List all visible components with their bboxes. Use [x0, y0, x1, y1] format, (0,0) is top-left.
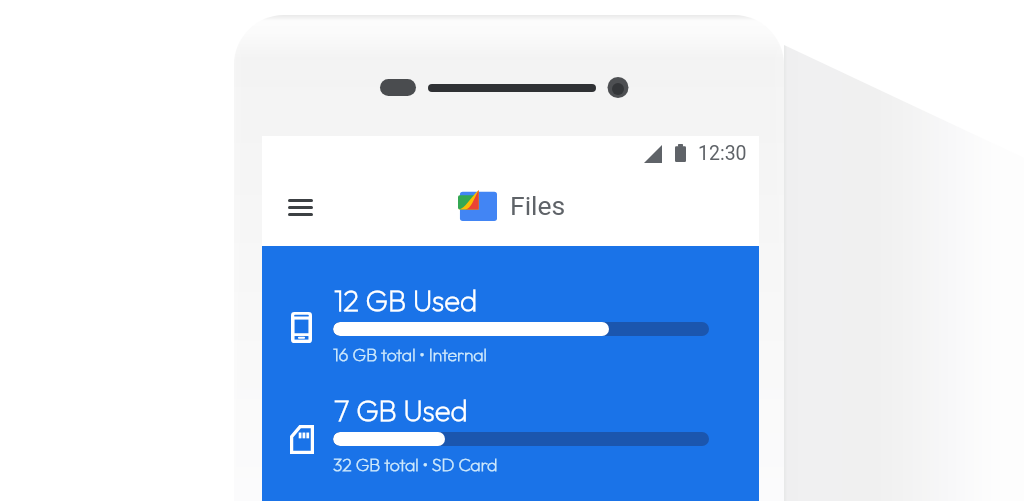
staticText: 12:30 — [698, 142, 747, 165]
button[interactable]: 12 GB Used — [262, 246, 759, 350]
button[interactable]: Open navigation drawer — [276, 183, 324, 231]
staticText: 7 GB Used — [334, 392, 468, 429]
staticText: Files — [510, 190, 566, 221]
button[interactable]: 7 GB Used — [262, 356, 759, 460]
staticText: 32 GB total • SD Card — [333, 453, 498, 475]
staticText: 16 GB total • Internal — [333, 343, 487, 365]
staticText: 12 GB Used — [334, 282, 477, 319]
